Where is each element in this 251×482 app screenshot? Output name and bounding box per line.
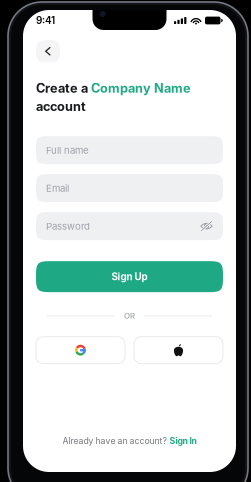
staticText: Email [46, 182, 69, 194]
staticText: Full name [46, 144, 89, 156]
staticText: Company Name [91, 80, 191, 96]
staticText: Create a [36, 80, 91, 96]
staticText: Sign In [169, 435, 196, 446]
staticText: OR [124, 311, 135, 321]
staticText: 9:41 [36, 14, 55, 26]
staticText: Password [46, 220, 90, 232]
staticText: account [36, 99, 86, 114]
button[interactable]: Sign up with Google [36, 337, 125, 364]
button[interactable]: Back [36, 40, 60, 62]
button[interactable]: Already have an account? [52, 431, 206, 450]
button[interactable]: Sign up with Apple [134, 337, 223, 364]
staticText: Sign Up [111, 271, 147, 283]
staticText: Already have an account? [62, 435, 166, 446]
button[interactable]: Sign Up [36, 261, 223, 292]
